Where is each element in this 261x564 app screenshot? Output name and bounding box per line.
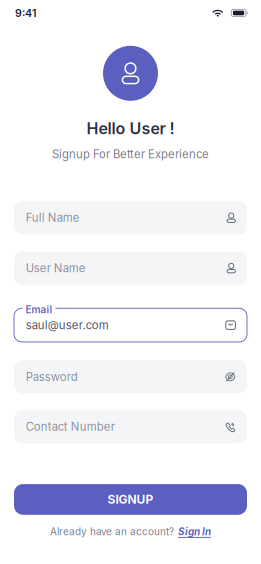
button[interactable]: Contact Number xyxy=(14,410,247,443)
button[interactable]: Password xyxy=(14,360,247,393)
staticText: Contact Number xyxy=(26,420,115,434)
staticText: Password xyxy=(26,370,78,384)
button[interactable]: SIGNUP xyxy=(14,484,247,515)
staticText: Sign In xyxy=(178,526,211,538)
staticText: Email xyxy=(25,304,52,316)
button[interactable]: User Name xyxy=(14,251,247,285)
button[interactable]: Sign In xyxy=(178,526,211,538)
staticText: 9:41 xyxy=(15,6,37,19)
staticText: Full Name xyxy=(26,211,80,225)
staticText: SIGNUP xyxy=(107,492,153,507)
staticText: User Name xyxy=(26,261,86,275)
staticText: Already have an account? xyxy=(50,526,174,538)
staticText: Hello User ! xyxy=(86,119,174,138)
button[interactable]: Full Name xyxy=(14,201,247,234)
staticText: saul@user.com xyxy=(26,318,109,332)
button[interactable]: saul@user.com xyxy=(14,304,247,342)
staticText: Signup For Better Experience xyxy=(52,147,209,161)
